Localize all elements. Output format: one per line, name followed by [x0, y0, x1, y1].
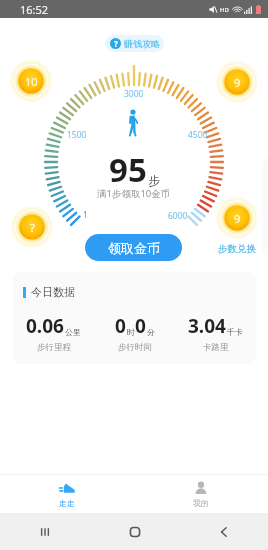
button[interactable]: ?: [105, 35, 164, 52]
button[interactable]: Back: [179, 513, 268, 550]
button[interactable]: Coin 10: [10, 60, 52, 102]
staticText: 3000: [124, 88, 144, 100]
staticText: 步数兑换: [218, 243, 256, 255]
staticText: 步: [148, 173, 160, 188]
button[interactable]: Coin 9: [216, 197, 258, 239]
staticText: 步行时间: [118, 342, 152, 353]
staticText: 6000: [168, 210, 188, 222]
staticText: 走走: [59, 498, 75, 508]
staticText: 千卡: [227, 327, 243, 337]
staticText: 领取金币: [108, 240, 160, 256]
button[interactable]: Recent apps: [0, 513, 90, 550]
staticText: 1: [83, 209, 88, 220]
button[interactable]: Coin ?: [11, 206, 53, 248]
staticText: ?: [114, 38, 118, 49]
staticText: 10: [25, 74, 38, 89]
button[interactable]: 走走: [0, 475, 134, 513]
staticText: 今日数据: [31, 285, 75, 299]
staticText: 3.04: [188, 313, 226, 339]
staticText: 0: [115, 313, 126, 339]
staticText: 我的: [193, 498, 209, 508]
staticText: 0.06: [26, 313, 64, 339]
staticText: 1500: [67, 129, 87, 141]
staticText: 赚钱攻略: [124, 38, 160, 49]
staticText: 0: [135, 313, 146, 339]
staticText: 步行里程: [37, 342, 71, 353]
button[interactable]: 领取金币: [85, 234, 182, 261]
button[interactable]: Coin 9: [216, 61, 258, 103]
staticText: HD: [220, 6, 229, 14]
staticText: ?: [30, 220, 35, 235]
staticText: 卡路里: [203, 342, 229, 353]
staticText: 16:52: [20, 2, 49, 17]
staticText: 满1步领取10金币: [97, 187, 171, 200]
staticText: 分: [147, 327, 155, 337]
staticText: 95: [109, 147, 147, 192]
staticText: 4500: [188, 129, 208, 141]
button[interactable]: 我的: [134, 475, 268, 513]
button[interactable]: Home: [90, 513, 179, 550]
staticText: 公里: [65, 327, 81, 337]
staticText: 9: [234, 211, 241, 226]
staticText: 时: [127, 327, 135, 337]
staticText: 9: [234, 75, 241, 90]
